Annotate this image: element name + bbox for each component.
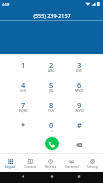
staticText: 9 — [77, 100, 82, 110]
staticText: TUV — [48, 108, 55, 113]
button[interactable]: 8 — [37, 100, 65, 120]
staticText: Keypad — [5, 165, 16, 169]
staticText: Settings — [87, 165, 99, 169]
button[interactable]: Keypad — [0, 153, 20, 172]
staticText: 6 — [77, 80, 82, 90]
button[interactable]: Backspace — [73, 139, 85, 151]
staticText: DEF — [76, 68, 83, 73]
button[interactable]: 6 — [65, 80, 93, 100]
button[interactable]: 9 — [65, 100, 93, 120]
staticText: Voicemail — [65, 165, 79, 169]
staticText: 1 — [21, 60, 26, 70]
button[interactable]: 4 — [10, 80, 37, 100]
button[interactable]: 0 — [37, 120, 65, 140]
button[interactable]: Settings — [82, 153, 103, 172]
button[interactable]: * — [10, 120, 37, 140]
staticText: PQRS — [19, 108, 28, 113]
staticText: 2 — [49, 60, 54, 70]
button[interactable]: 1 — [10, 60, 37, 80]
button[interactable]: 3 — [65, 60, 93, 80]
button[interactable]: 2 — [37, 60, 65, 80]
button[interactable]: 7 — [10, 100, 37, 120]
staticText: 4:50 — [2, 2, 10, 7]
staticText: 7 — [21, 100, 26, 110]
button[interactable]: Voicemail — [61, 153, 82, 172]
button[interactable]: 5 — [37, 80, 65, 100]
button[interactable]: Recents — [40, 153, 61, 172]
staticText: + — [51, 128, 53, 133]
staticText: ABC — [48, 68, 55, 73]
staticText: 5 — [49, 80, 54, 90]
staticText: WXYZ — [75, 108, 84, 113]
staticText: Recents — [45, 165, 57, 169]
staticText: (555) 239-2157 — [33, 12, 71, 19]
staticText: MNO — [75, 88, 84, 93]
button[interactable]: # — [65, 120, 93, 140]
button[interactable]: Contacts — [20, 153, 40, 172]
staticText: 0 — [49, 120, 54, 130]
staticText: * — [21, 120, 26, 130]
button[interactable]: Call — [45, 137, 59, 150]
staticText: 3 — [77, 60, 82, 70]
staticText: GHI — [20, 88, 27, 93]
staticText: Contacts — [24, 165, 37, 169]
staticText: 8 — [49, 100, 54, 110]
staticText: JKL — [49, 88, 54, 93]
staticText: # — [77, 120, 82, 130]
staticText: 4 — [21, 80, 26, 90]
